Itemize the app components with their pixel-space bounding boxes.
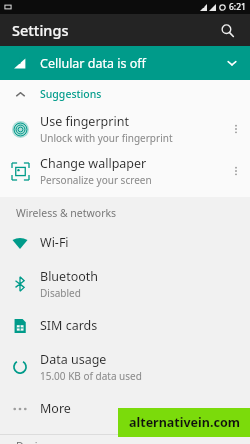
button[interactable]: Cellular data is off: [0, 46, 250, 80]
button[interactable]: More options: [222, 108, 250, 150]
button[interactable]: More: [0, 388, 250, 429]
staticText: Cellular data is off: [40, 55, 146, 72]
button[interactable]: Suggestions: [0, 80, 250, 108]
button[interactable]: Bluetooth: [0, 263, 250, 305]
staticText: 15.00 KB of data used: [40, 369, 142, 383]
staticText: Change wallpaper: [40, 155, 147, 172]
button[interactable]: Use fingerprint: [0, 108, 250, 150]
button[interactable]: Data usage: [0, 346, 250, 388]
staticText: More: [40, 400, 71, 417]
button[interactable]: More options: [222, 150, 250, 192]
button[interactable]: Change wallpaper: [0, 150, 250, 192]
staticText: Wi-Fi: [40, 234, 69, 251]
staticText: 6:21: [229, 1, 246, 13]
staticText: SIM cards: [40, 317, 98, 334]
staticText: Data usage: [40, 351, 107, 368]
staticText: Use fingerprint: [40, 113, 129, 130]
staticText: Suggestions: [40, 87, 102, 101]
staticText: Bluetooth: [40, 268, 99, 285]
button[interactable]: Wi-Fi: [0, 222, 250, 263]
button[interactable]: SIM cards: [0, 305, 250, 346]
staticText: Device: [16, 439, 49, 444]
staticText: alternativein.com: [129, 414, 240, 431]
staticText: Settings: [12, 20, 69, 40]
staticText: Disabled: [40, 286, 81, 300]
button[interactable]: Search: [214, 17, 240, 43]
staticText: Wireless & networks: [16, 206, 117, 220]
staticText: Unlock with your fingerprint: [40, 131, 173, 145]
staticText: Personalize your screen: [40, 173, 152, 187]
